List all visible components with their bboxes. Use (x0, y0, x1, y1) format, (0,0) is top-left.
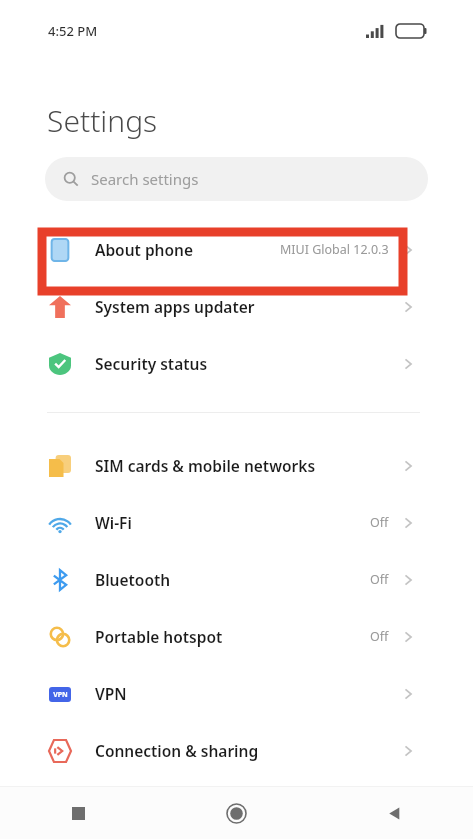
staticText: VPN (95, 683, 401, 704)
staticText: Off (370, 571, 389, 588)
button[interactable]: Security status (0, 335, 473, 392)
button[interactable]: Wi-Fi (0, 494, 473, 551)
button[interactable]: Recents (0, 787, 157, 839)
staticText: Off (370, 628, 389, 645)
staticText: System apps updater (95, 296, 401, 317)
button[interactable]: About phone (0, 221, 473, 278)
staticText: SIM cards & mobile networks (95, 455, 401, 476)
staticText: Settings (47, 100, 158, 141)
staticText: 4:52 PM (48, 22, 98, 40)
staticText: Off (370, 514, 389, 531)
staticText: Wi-Fi (95, 512, 370, 533)
staticText: Search settings (91, 169, 199, 189)
button[interactable]: Connection & sharing (0, 722, 473, 779)
staticText: Connection & sharing (95, 740, 401, 761)
staticText: Security status (95, 353, 401, 374)
button[interactable]: Search settings (45, 157, 428, 201)
button[interactable]: SIM cards & mobile networks (0, 437, 473, 494)
staticText: MIUI Global 12.0.3 (280, 241, 389, 258)
button[interactable]: System apps updater (0, 278, 473, 335)
button[interactable]: Bluetooth (0, 551, 473, 608)
button[interactable]: Back (315, 787, 473, 839)
button[interactable]: VPN (0, 665, 473, 722)
button[interactable]: Home (157, 787, 315, 839)
button[interactable]: Portable hotspot (0, 608, 473, 665)
staticText: VPN (53, 690, 68, 700)
staticText: Portable hotspot (95, 626, 370, 647)
staticText: About phone (95, 239, 280, 260)
staticText: Bluetooth (95, 569, 370, 590)
